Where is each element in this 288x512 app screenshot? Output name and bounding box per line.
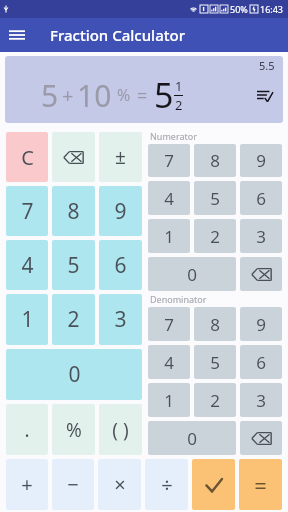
button[interactable]: Denominator backspace (240, 421, 282, 455)
staticText: 1 (164, 225, 174, 248)
staticText: 0 (187, 427, 197, 450)
staticText: − (67, 471, 79, 498)
staticText: Fraction Calculator (50, 25, 185, 45)
button[interactable]: 6 (240, 345, 282, 379)
button[interactable]: Menu (0, 18, 34, 52)
button[interactable]: 7 (148, 307, 190, 341)
staticText: 5 (210, 187, 220, 210)
button[interactable]: 7 (6, 186, 48, 236)
staticText: 10 (77, 75, 112, 116)
staticText: 4 (21, 251, 34, 280)
staticText: + (21, 471, 33, 498)
staticText: 8 (210, 149, 220, 172)
staticText: 3 (256, 225, 266, 248)
button[interactable]: 1 (6, 294, 48, 345)
button[interactable]: 8 (52, 186, 95, 236)
button[interactable]: 9 (240, 307, 282, 341)
staticText: 9 (114, 197, 127, 226)
button[interactable]: 5 (194, 181, 236, 215)
staticText: C (21, 144, 34, 171)
button[interactable]: 0 (148, 257, 236, 291)
button[interactable]: ± (99, 132, 142, 182)
button[interactable]: 5 (52, 240, 95, 290)
button[interactable]: Confirm (192, 459, 235, 510)
staticText: = (137, 83, 148, 108)
staticText: 5 (41, 75, 59, 116)
staticText: 2 (175, 96, 183, 114)
button[interactable]: 1 (148, 219, 190, 253)
button[interactable]: 7 (148, 144, 190, 177)
staticText: 8 (67, 197, 80, 226)
button[interactable]: 1 (148, 383, 190, 417)
staticText: Denominator (150, 293, 207, 305)
button[interactable]: × (98, 459, 141, 510)
staticText: 7 (21, 197, 34, 226)
staticText: 9 (256, 313, 266, 336)
button[interactable]: 3 (240, 219, 282, 253)
staticText: 1 (21, 305, 34, 334)
button[interactable]: 9 (99, 186, 142, 236)
button[interactable]: Numerator backspace (240, 257, 282, 291)
button[interactable]: ( ) (99, 404, 142, 455)
staticText: 5 (154, 72, 174, 118)
staticText: 7 (164, 313, 174, 336)
staticText: 2 (210, 389, 220, 412)
staticText: Numerator (150, 130, 197, 142)
button[interactable]: 5 (194, 345, 236, 379)
button[interactable]: 6 (99, 240, 142, 290)
button[interactable]: 6 (240, 181, 282, 215)
staticText: % (66, 417, 82, 443)
staticText: . (24, 417, 30, 443)
staticText: 5 (67, 251, 80, 280)
staticText: ± (115, 144, 126, 170)
staticText: 2 (67, 305, 80, 334)
button[interactable]: − (52, 459, 94, 510)
staticText: 0 (187, 263, 197, 286)
button[interactable]: 8 (194, 307, 236, 341)
staticText: ( ) (112, 417, 129, 443)
button[interactable]: + (6, 459, 48, 510)
button[interactable]: . (6, 404, 48, 455)
button[interactable]: 2 (52, 294, 95, 345)
staticText: × (114, 471, 126, 498)
staticText: 5 (210, 351, 220, 374)
button[interactable]: 3 (99, 294, 142, 345)
button[interactable]: 2 (194, 219, 236, 253)
button[interactable]: 4 (148, 181, 190, 215)
staticText: 3 (114, 305, 127, 334)
button[interactable]: C (6, 132, 48, 182)
button[interactable]: 4 (6, 240, 48, 290)
staticText: 6 (114, 251, 127, 280)
button[interactable]: 0 (148, 421, 236, 455)
staticText: 8 (210, 313, 220, 336)
staticText: + (62, 82, 74, 109)
button[interactable]: = (239, 459, 282, 510)
staticText: 2 (210, 225, 220, 248)
staticText: 16:43 (260, 3, 284, 15)
staticText: 3 (256, 389, 266, 412)
button[interactable]: Backspace (52, 132, 95, 182)
staticText: 6 (256, 187, 266, 210)
staticText: 4 (164, 187, 174, 210)
button[interactable]: 0 (6, 349, 142, 400)
button[interactable]: 8 (194, 144, 236, 177)
staticText: % (117, 84, 131, 106)
staticText: ÷ (161, 471, 173, 498)
staticText: 5.5 (259, 58, 275, 73)
staticText: 50% (230, 3, 248, 15)
button[interactable]: ÷ (145, 459, 188, 510)
button[interactable]: 5.5 (5, 56, 283, 123)
staticText: 7 (164, 149, 174, 172)
button[interactable]: 2 (194, 383, 236, 417)
staticText: 9 (256, 149, 266, 172)
staticText: 1 (175, 77, 183, 95)
staticText: 6 (256, 351, 266, 374)
button[interactable]: History (253, 83, 277, 107)
button[interactable]: 4 (148, 345, 190, 379)
staticText: 1 (164, 389, 174, 412)
button[interactable]: 3 (240, 383, 282, 417)
button[interactable]: % (52, 404, 95, 455)
button[interactable]: 9 (240, 144, 282, 177)
staticText: 0 (68, 360, 81, 389)
staticText: 4 (164, 351, 174, 374)
